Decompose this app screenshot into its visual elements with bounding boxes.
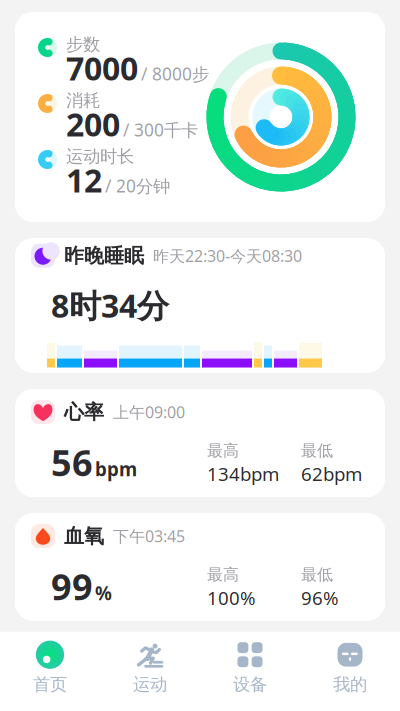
staticText: 200 (66, 103, 120, 145)
staticText: 8时34分 (51, 284, 169, 326)
staticText: / 8000步 (141, 62, 209, 85)
button[interactable]: 我的 (300, 642, 400, 695)
staticText: 运动时长 (66, 146, 134, 167)
staticText: bpm (95, 457, 137, 481)
staticText: 最高 (207, 441, 239, 460)
button[interactable]: 首页 (0, 642, 100, 695)
staticText: 心率 (64, 400, 104, 424)
staticText: 首页 (33, 674, 67, 695)
button[interactable]: 设备 (200, 642, 300, 695)
staticText: 步数 (66, 34, 100, 55)
staticText: 62bpm (301, 461, 362, 486)
staticText: / 300千卡 (123, 118, 198, 141)
staticText: 昨天22:30-今天08:30 (153, 245, 302, 266)
staticText: % (95, 581, 112, 605)
staticText: 昨晚睡眠 (64, 243, 144, 268)
staticText: / 20分钟 (105, 174, 170, 197)
staticText: 96% (301, 585, 339, 610)
staticText: 血氧 (64, 524, 104, 548)
staticText: 上午09:00 (113, 401, 185, 423)
staticText: 100% (207, 585, 256, 610)
staticText: 我的 (333, 674, 367, 695)
staticText: 最高 (207, 565, 239, 584)
staticText: 运动 (133, 674, 167, 695)
staticText: 设备 (233, 674, 267, 695)
button[interactable]: 运动 (100, 642, 200, 695)
staticText: 最低 (301, 441, 333, 460)
staticText: 最低 (301, 565, 333, 584)
staticText: 56 (51, 438, 93, 486)
staticText: 99 (51, 562, 93, 610)
staticText: 7000 (66, 47, 138, 89)
staticText: 消耗 (66, 90, 100, 111)
staticText: 下午03:45 (113, 525, 185, 547)
staticText: 12 (66, 159, 102, 201)
staticText: 134bpm (207, 461, 279, 486)
